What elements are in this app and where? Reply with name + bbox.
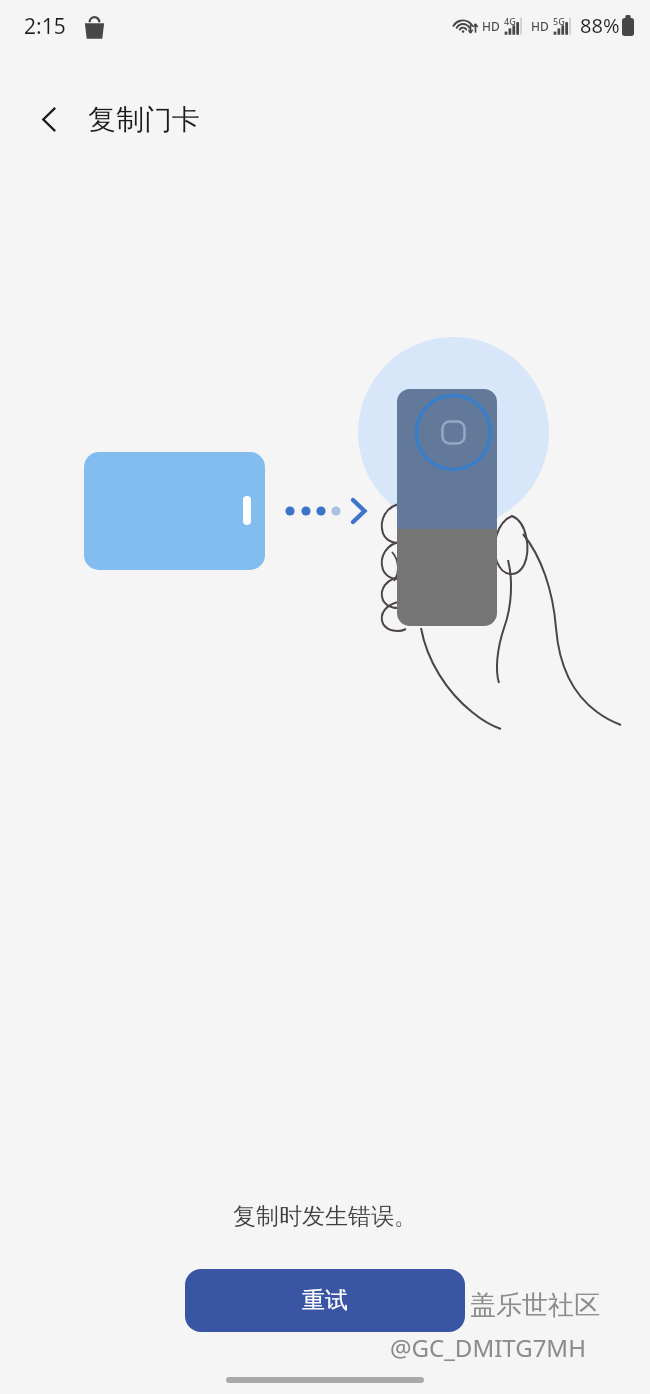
staticText: 2:15 (24, 12, 66, 41)
staticText: 重试 (302, 1286, 348, 1315)
staticText: 复制门卡 (88, 102, 200, 137)
staticText: @GC_DMITG7MH (390, 1331, 586, 1364)
button[interactable]: Back (20, 90, 78, 148)
button[interactable]: 重试 (185, 1269, 465, 1332)
staticText: 盖乐世社区 (470, 1289, 600, 1322)
staticText: HD (531, 18, 549, 34)
staticText: 88% (580, 12, 620, 39)
staticText: 4G (504, 15, 516, 27)
staticText: 复制时发生错误。 (0, 1202, 650, 1231)
staticText: 5G (553, 15, 565, 27)
staticText: HD (482, 18, 500, 34)
